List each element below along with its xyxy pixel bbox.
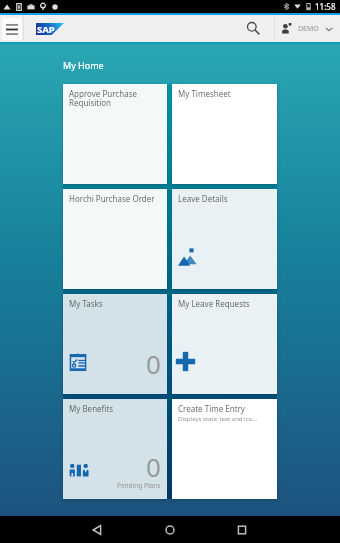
staticText: 0: [146, 346, 161, 381]
button[interactable]: Approve Purchase Requisition: [63, 84, 167, 184]
staticText: My Timesheet: [178, 88, 231, 99]
staticText: My Home: [63, 59, 104, 71]
staticText: 11:58: [315, 1, 336, 12]
button[interactable]: Horchi Purchase Order: [63, 189, 167, 289]
button[interactable]: DEMO: [275, 15, 340, 42]
button[interactable]: Home: [157, 517, 183, 543]
staticText: 0: [146, 449, 161, 484]
button[interactable]: My Tasks: [63, 294, 167, 394]
button[interactable]: Back: [84, 517, 110, 543]
staticText: Pending Plans: [117, 481, 161, 490]
staticText: Horchi Purchase Order: [69, 193, 155, 204]
staticText: SAP: [37, 23, 55, 35]
button[interactable]: My Leave Requests: [172, 294, 277, 394]
staticText: Create Time Entry: [178, 403, 245, 414]
staticText: DEMO: [298, 24, 319, 34]
staticText: My Benefits: [69, 403, 114, 414]
button[interactable]: My Timesheet: [172, 84, 277, 184]
staticText: Leave Details: [178, 193, 228, 204]
button[interactable]: My Benefits: [63, 399, 167, 499]
button[interactable]: Recents: [229, 517, 255, 543]
staticText: Approve Purchase Requisition: [69, 88, 161, 109]
staticText: My Tasks: [69, 298, 103, 309]
button[interactable]: Search: [240, 15, 267, 42]
staticText: My Leave Requests: [178, 298, 250, 309]
button[interactable]: Create Time Entry: [172, 399, 277, 499]
staticText: Displays static text and ico...: [178, 415, 257, 423]
button[interactable]: Leave Details: [172, 189, 277, 289]
button[interactable]: Menu: [2, 18, 22, 40]
